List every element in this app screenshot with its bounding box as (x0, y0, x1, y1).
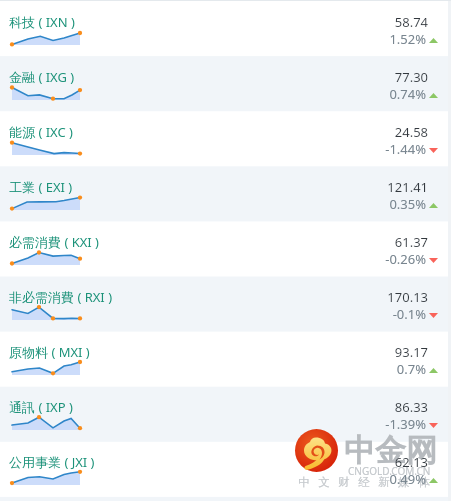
button[interactable]: 公用事業 ( JXI ) (0, 441, 448, 496)
staticText: 93.17 (0, 343, 428, 361)
button[interactable]: 通訊 ( IXP ) (0, 386, 448, 441)
staticText: 170.13 (0, 288, 428, 306)
staticText: 必需消費 ( KXI ) (9, 233, 100, 251)
staticText: 原物料 ( MXI ) (9, 343, 90, 361)
staticText: -1.39% (0, 415, 426, 433)
staticText: 通訊 ( IXP ) (9, 398, 73, 416)
button[interactable]: 非必需消費 ( RXI ) (0, 276, 448, 331)
staticText: 1.52% (0, 30, 426, 48)
button[interactable]: 工業 ( EXI ) (0, 166, 448, 221)
staticText: 金融 ( IXG ) (9, 68, 75, 86)
staticText: 0.49% (0, 470, 426, 488)
button[interactable]: 金融 ( IXG ) (0, 56, 448, 111)
staticText: 公用事業 ( JXI ) (9, 453, 95, 471)
staticText: 61.37 (0, 233, 428, 251)
button[interactable]: 能源 ( IXC ) (0, 111, 448, 166)
button[interactable]: 科技 ( IXN ) (0, 1, 448, 56)
staticText: 121.41 (0, 178, 428, 196)
staticText: -0.1% (0, 305, 426, 323)
staticText: 62.13 (0, 453, 428, 471)
staticText: -0.26% (0, 250, 426, 268)
staticText: 科技 ( IXN ) (9, 13, 75, 31)
staticText: 能源 ( IXC ) (9, 123, 73, 141)
staticText: 0.7% (0, 360, 426, 378)
staticText: 中文财经新媒体 (294, 475, 434, 489)
staticText: 非必需消費 ( RXI ) (9, 288, 113, 306)
staticText: CNGOLD.COM.CN (348, 464, 431, 478)
staticText: 24.58 (0, 123, 428, 141)
staticText: 86.33 (0, 398, 428, 416)
button[interactable]: 原物料 ( MXI ) (0, 331, 448, 386)
staticText: 0.74% (0, 85, 426, 103)
button[interactable]: 必需消費 ( KXI ) (0, 221, 448, 276)
staticText: 77.30 (0, 68, 428, 86)
staticText: 58.74 (0, 13, 428, 31)
staticText: -1.44% (0, 140, 426, 158)
staticText: 中金网 (344, 431, 437, 470)
staticText: 0.35% (0, 195, 426, 213)
staticText: 工業 ( EXI ) (9, 178, 73, 196)
